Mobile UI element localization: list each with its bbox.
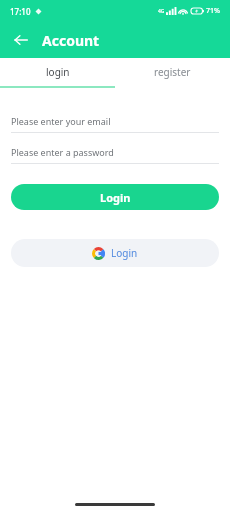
staticText: 17:10 bbox=[10, 6, 31, 17]
staticText: Account bbox=[42, 31, 100, 50]
staticText: login bbox=[46, 65, 70, 79]
button[interactable]: Please enter your email bbox=[11, 110, 219, 132]
staticText: Please enter your email bbox=[11, 115, 111, 127]
button[interactable]: login bbox=[0, 58, 115, 86]
staticText: Please enter a password bbox=[11, 146, 114, 158]
button[interactable]: register bbox=[115, 58, 230, 86]
staticText: 4G bbox=[158, 8, 165, 15]
staticText: register bbox=[154, 65, 191, 79]
button[interactable]: Login bbox=[11, 184, 219, 210]
button[interactable]: Login bbox=[11, 239, 219, 267]
button[interactable]: Back bbox=[6, 25, 36, 55]
staticText: Login bbox=[100, 190, 131, 205]
staticText: 71% bbox=[206, 6, 220, 16]
button[interactable]: Please enter a password bbox=[11, 141, 219, 163]
staticText: Login bbox=[111, 246, 138, 260]
